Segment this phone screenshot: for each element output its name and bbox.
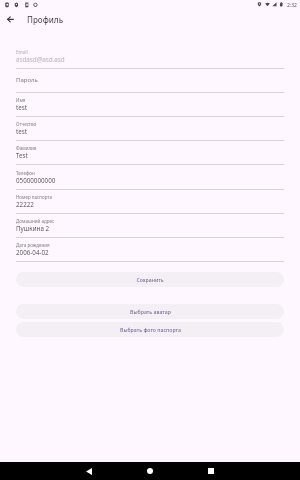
staticText: 05000000000 (16, 176, 56, 185)
button[interactable]: Фамилия (16, 145, 284, 164)
button[interactable]: Назад (2, 11, 19, 28)
staticText: Домашний адрес (16, 218, 55, 224)
staticText: 22222 (16, 200, 34, 209)
button[interactable]: Отчество (16, 121, 284, 140)
staticText: asdasd@asd.asd (16, 55, 65, 64)
staticText: test (16, 127, 28, 136)
button[interactable]: Имя (16, 97, 284, 116)
button[interactable]: Пароль (16, 68, 284, 92)
staticText: Пароль (16, 76, 38, 84)
button[interactable]: Номер паспорта (16, 194, 284, 213)
staticText: Выбрать фото паспорта (120, 326, 181, 333)
staticText: Отчество (16, 121, 37, 127)
staticText: Выбрать аватар (130, 308, 171, 315)
staticText: Пушкина 2 (16, 224, 50, 233)
button[interactable]: Телефон (16, 170, 284, 189)
button[interactable]: Email (16, 49, 284, 68)
staticText: Дата рождения (16, 242, 50, 248)
button[interactable]: Дата рождения (16, 242, 284, 261)
staticText: Номер паспорта (16, 194, 52, 200)
staticText: 2006-04-02 (16, 248, 49, 257)
button[interactable]: Домашний адрес (16, 218, 284, 237)
staticText: Фамилия (16, 145, 37, 151)
staticText: test (16, 103, 28, 112)
staticText: Имя (16, 97, 26, 103)
button[interactable]: Назад (74, 462, 104, 480)
button[interactable]: Выбрать аватар (16, 304, 284, 319)
button[interactable]: Недавние (196, 462, 226, 480)
staticText: Email (16, 49, 28, 55)
staticText: 2:32 (287, 2, 297, 9)
staticText: Профиль (27, 14, 64, 25)
staticText: Телефон (16, 170, 35, 176)
button[interactable]: Сохранить (16, 272, 284, 287)
button[interactable]: Выбрать фото паспорта (16, 322, 284, 337)
staticText: Сохранить (136, 276, 164, 283)
staticText: Test (16, 151, 28, 160)
button[interactable]: Главная (135, 462, 165, 480)
